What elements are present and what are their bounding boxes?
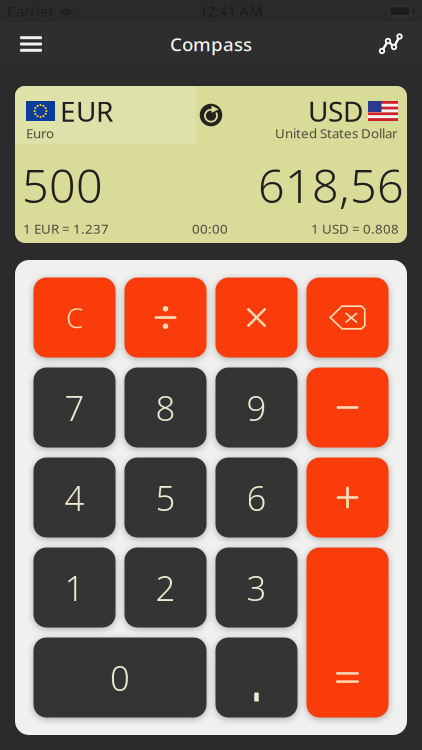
staticText: 3 xyxy=(246,564,266,610)
staticText: 2 xyxy=(155,564,175,610)
staticText: 500 xyxy=(22,154,103,216)
button[interactable] xyxy=(306,367,388,447)
staticText: 8 xyxy=(155,384,175,430)
button[interactable] xyxy=(124,277,206,357)
staticText: United States Dollar xyxy=(275,124,398,142)
button[interactable]: 6 xyxy=(215,457,297,537)
staticText: C xyxy=(66,299,83,336)
button[interactable]: 7 xyxy=(33,367,115,447)
staticText: 1 xyxy=(64,564,84,610)
button[interactable]: 9 xyxy=(215,367,297,447)
button[interactable]: Swap currencies xyxy=(199,103,222,126)
staticText: 5 xyxy=(155,474,175,520)
button[interactable]: 0 xyxy=(33,637,206,717)
staticText: Euro xyxy=(26,124,54,142)
button[interactable]: EUR xyxy=(15,86,196,144)
staticText: 00:00 xyxy=(192,220,228,237)
button[interactable] xyxy=(306,277,388,357)
staticText: Compass xyxy=(170,32,252,56)
staticText: 7 xyxy=(64,384,84,430)
button[interactable]: Menu xyxy=(8,22,54,66)
button[interactable]: 5 xyxy=(124,457,206,537)
button[interactable]: 4 xyxy=(33,457,115,537)
button[interactable]: 8 xyxy=(124,367,206,447)
button[interactable]: USD xyxy=(226,86,407,144)
button[interactable] xyxy=(215,277,297,357)
button[interactable]: Rate chart xyxy=(368,22,414,66)
button[interactable]: 2 xyxy=(124,547,206,627)
button[interactable]: C xyxy=(33,277,115,357)
staticText: 618,56 xyxy=(258,154,404,216)
button[interactable] xyxy=(306,457,388,537)
staticText: 6 xyxy=(246,474,266,520)
staticText: 1 EUR = 1.237 xyxy=(23,220,109,237)
button[interactable] xyxy=(215,637,297,717)
staticText: 9 xyxy=(246,384,266,430)
button[interactable] xyxy=(306,547,388,717)
button[interactable]: 3 xyxy=(215,547,297,627)
staticText: Carrier xyxy=(7,1,54,21)
staticText: 4 xyxy=(64,474,84,520)
button[interactable]: 1 xyxy=(33,547,115,627)
staticText: EUR xyxy=(60,92,113,130)
staticText: 0 xyxy=(110,654,130,700)
staticText: 12:41 AM xyxy=(199,1,262,21)
staticText: USD xyxy=(308,92,363,130)
staticText: 1 USD = 0.808 xyxy=(311,220,399,237)
